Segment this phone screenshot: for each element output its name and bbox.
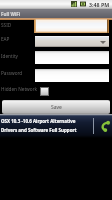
staticText: OSX 10.3 -10.6 Airport Alternative: [1, 118, 76, 124]
staticText: Password: [1, 70, 23, 76]
staticText: Drivers and Software Full Support: [1, 127, 77, 133]
button[interactable]: Save: [2, 100, 110, 114]
button[interactable]: OSX 10.3 -10.6 Airport Alternative: [0, 114, 112, 138]
staticText: Save: [51, 104, 62, 111]
staticText: EAP: [1, 36, 10, 42]
button[interactable]: Call: [95, 114, 112, 138]
button[interactable]: Password input: [35, 69, 109, 82]
staticText: Hidden Network: [1, 86, 38, 92]
staticText: 3:48 PM: [89, 1, 110, 8]
staticText: Identity: [1, 53, 18, 59]
staticText: SSID: [1, 22, 12, 28]
button[interactable]: Hidden Network checkbox: [40, 87, 49, 96]
staticText: Full WiFi: [1, 11, 21, 17]
button[interactable]: Identity input: [35, 51, 109, 64]
button[interactable]: SSID input: [34, 19, 109, 33]
button[interactable]: EAP method: [35, 36, 109, 47]
